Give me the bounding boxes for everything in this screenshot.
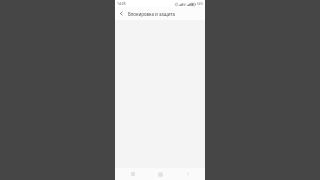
button[interactable]: Home <box>150 168 170 180</box>
button[interactable]: Recents <box>123 168 143 180</box>
staticText: Блокировка и защита <box>128 11 176 17</box>
button[interactable]: Back <box>115 7 128 20</box>
staticText: 64% <box>197 2 203 6</box>
staticText: 14:05 <box>117 1 126 6</box>
